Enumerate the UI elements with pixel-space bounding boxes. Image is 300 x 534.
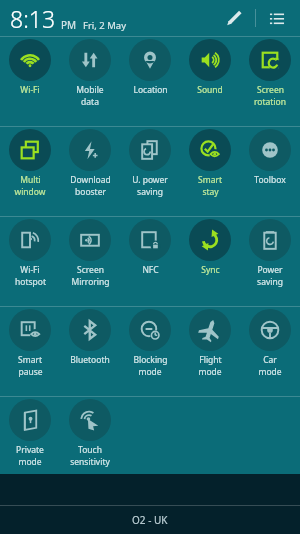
- staticText: Mirroring: [71, 276, 110, 288]
- staticText: booster: [75, 186, 106, 198]
- button[interactable]: Mobile data: [69, 37, 111, 108]
- staticText: Screen: [77, 264, 104, 276]
- staticText: Multi: [20, 174, 41, 186]
- staticText: Screen: [257, 84, 284, 96]
- staticText: Smart: [18, 354, 42, 366]
- staticText: mode: [18, 456, 42, 468]
- staticText: 8:13: [10, 3, 56, 34]
- button[interactable]: Location: [129, 37, 171, 96]
- button[interactable]: Power saving: [249, 217, 291, 288]
- button[interactable]: Screen rotation: [249, 37, 291, 108]
- button[interactable]: Edit: [219, 3, 249, 33]
- staticText: Car: [263, 354, 277, 366]
- button[interactable]: U. power saving: [129, 127, 171, 198]
- button[interactable]: Flight mode: [189, 307, 231, 378]
- button[interactable]: Wi-Fi hotspot: [9, 217, 51, 288]
- staticText: Private: [16, 444, 44, 456]
- staticText: rotation: [254, 96, 286, 108]
- staticText: Flight: [199, 354, 222, 366]
- staticText: Smart: [198, 174, 222, 186]
- button[interactable]: Smart pause: [9, 307, 51, 378]
- button[interactable]: Smart stay: [189, 127, 231, 198]
- staticText: O2 - UK: [132, 513, 168, 527]
- staticText: sensitivity: [70, 456, 110, 468]
- staticText: data: [81, 96, 99, 108]
- staticText: saving: [257, 276, 283, 288]
- button[interactable]: Blocking mode: [129, 307, 171, 378]
- staticText: Sync: [201, 264, 220, 276]
- staticText: Touch: [78, 444, 102, 456]
- staticText: NFC: [142, 264, 159, 276]
- staticText: Bluetooth: [70, 354, 110, 366]
- staticText: hotspot: [15, 276, 46, 288]
- button[interactable]: Toolbox: [249, 127, 291, 186]
- button[interactable]: Multi window: [9, 127, 51, 198]
- button[interactable]: Download booster: [69, 127, 111, 198]
- button[interactable]: Car mode: [249, 307, 291, 378]
- staticText: window: [14, 186, 46, 198]
- staticText: Wi-Fi: [20, 84, 40, 96]
- staticText: Download: [70, 174, 111, 186]
- button[interactable]: Screen Mirroring: [69, 217, 111, 288]
- staticText: U. power: [132, 174, 168, 186]
- button[interactable]: Bluetooth: [69, 307, 111, 366]
- button[interactable]: Wi-Fi: [9, 37, 51, 96]
- staticText: saving: [137, 186, 163, 198]
- staticText: mode: [258, 366, 282, 378]
- button[interactable]: NFC: [129, 217, 171, 276]
- staticText: Location: [133, 84, 168, 96]
- button[interactable]: Private mode: [9, 397, 51, 468]
- staticText: mode: [198, 366, 222, 378]
- button[interactable]: Sync: [189, 217, 231, 276]
- staticText: mode: [138, 366, 162, 378]
- staticText: Power: [257, 264, 283, 276]
- button[interactable]: Notifications list: [262, 3, 292, 33]
- staticText: Sound: [197, 84, 223, 96]
- staticText: PM: [61, 18, 77, 32]
- staticText: Toolbox: [254, 174, 286, 186]
- staticText: stay: [202, 186, 219, 198]
- staticText: Wi-Fi: [20, 264, 40, 276]
- staticText: Mobile: [76, 84, 104, 96]
- staticText: Blocking: [133, 354, 168, 366]
- staticText: Fri, 2 May: [83, 19, 127, 32]
- button[interactable]: Touch sensitivity: [69, 397, 111, 468]
- button[interactable]: Sound: [189, 37, 231, 96]
- staticText: pause: [18, 366, 43, 378]
